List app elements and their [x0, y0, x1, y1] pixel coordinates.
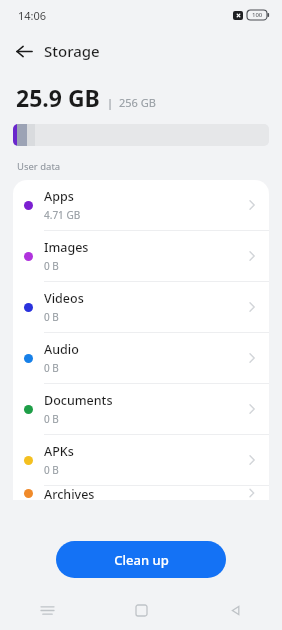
staticText: APKs	[44, 443, 74, 460]
button[interactable]: Recent apps	[0, 590, 94, 630]
button[interactable]: Apps	[13, 180, 269, 230]
button[interactable]: Clean up	[56, 541, 226, 578]
staticText: |	[107, 95, 114, 110]
staticText: 100	[252, 11, 263, 19]
staticText: Audio	[44, 341, 79, 358]
staticText: 0 B	[44, 259, 59, 273]
staticText: User data	[17, 160, 61, 173]
button[interactable]: Back	[8, 35, 40, 67]
staticText: Documents	[44, 392, 113, 409]
button[interactable]: APKs	[13, 435, 269, 485]
button[interactable]: Audio	[13, 333, 269, 383]
button[interactable]: Videos	[13, 282, 269, 332]
staticText: 0 B	[44, 310, 59, 324]
staticText: 256 GB	[119, 95, 156, 110]
staticText: 0 B	[44, 463, 59, 477]
staticText: Archives	[44, 486, 95, 500]
button[interactable]: Documents	[13, 384, 269, 434]
button[interactable]: Back	[188, 590, 282, 630]
staticText: Videos	[44, 290, 84, 307]
staticText: Storage	[44, 41, 100, 61]
staticText: Clean up	[114, 551, 169, 569]
staticText: 0 B	[44, 361, 59, 375]
staticText: 25.9 GB	[16, 82, 100, 113]
staticText: Images	[44, 239, 89, 256]
button[interactable]: Archives	[13, 486, 269, 500]
button[interactable]: Home	[94, 590, 188, 630]
staticText: 4.71 GB	[44, 208, 81, 222]
staticText: 0 B	[44, 412, 59, 426]
staticText: 14:06	[18, 8, 47, 23]
button[interactable]: Images	[13, 231, 269, 281]
staticText: Apps	[44, 188, 74, 205]
